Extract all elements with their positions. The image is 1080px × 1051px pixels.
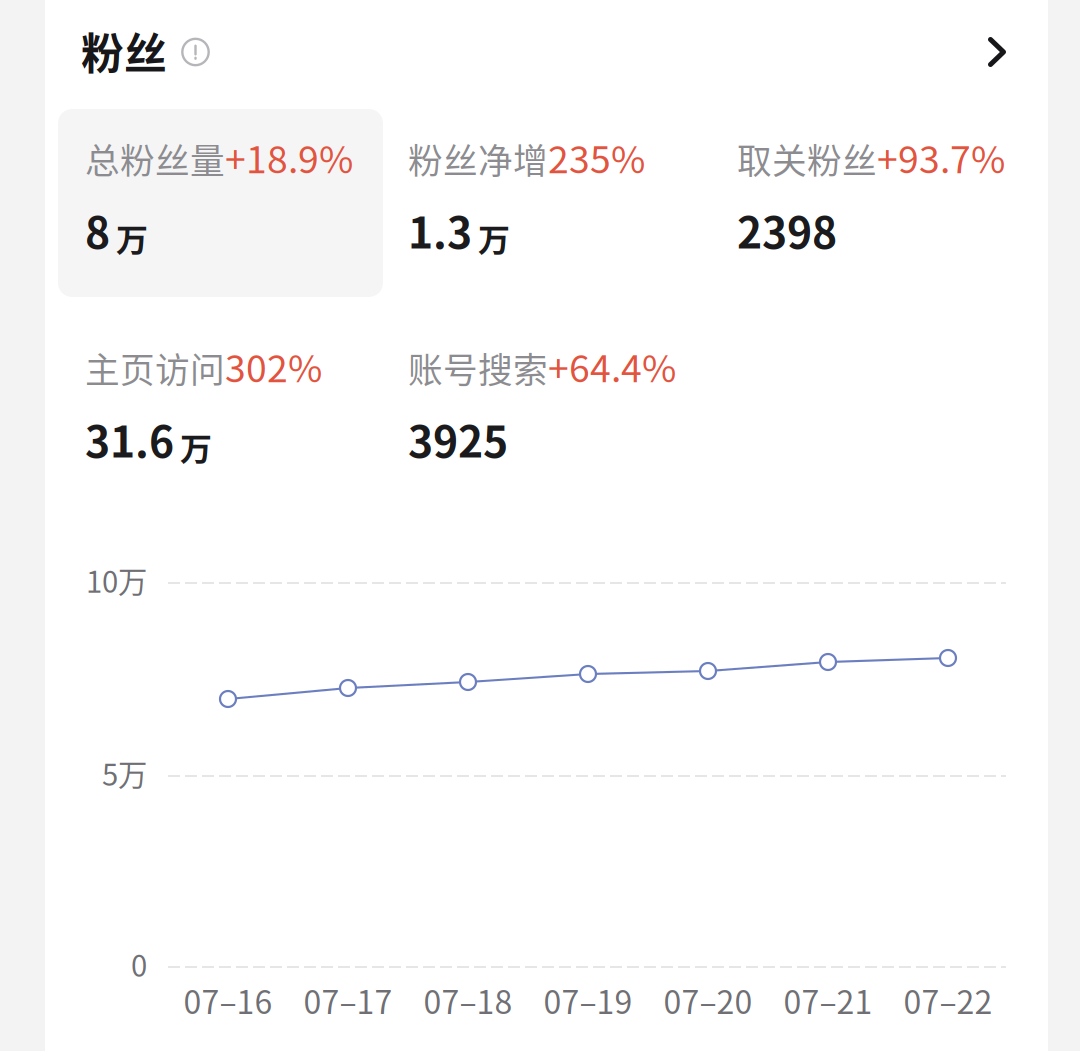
staticText: 总粉丝量: [85, 134, 225, 184]
button[interactable]: 主页访问: [58, 318, 383, 506]
staticText: 235%: [548, 130, 645, 184]
staticText: 粉丝: [81, 20, 167, 82]
button[interactable]: 粉丝 详情: [45, 0, 966, 104]
button[interactable]: 取关粉丝: [710, 109, 1035, 297]
staticText: +93.7%: [877, 130, 1005, 184]
staticText: 万: [116, 215, 148, 261]
staticText: 07–17: [303, 977, 392, 1023]
staticText: 8: [85, 199, 110, 261]
staticText: 07–19: [543, 977, 632, 1023]
staticText: 07–22: [903, 977, 992, 1023]
staticText: 万: [180, 424, 212, 470]
staticText: 07–18: [423, 977, 512, 1023]
staticText: 账号搜索: [408, 343, 548, 393]
staticText: 302%: [225, 339, 322, 393]
staticText: 2398: [737, 199, 837, 261]
staticText: 粉丝净增: [408, 134, 548, 184]
staticText: 取关粉丝: [737, 134, 877, 184]
staticText: 1.3: [408, 199, 472, 261]
staticText: 31.6: [85, 408, 174, 470]
staticText: 主页访问: [85, 343, 225, 393]
staticText: 07–21: [783, 977, 872, 1023]
staticText: +64.4%: [548, 339, 676, 393]
staticText: +18.9%: [225, 130, 353, 184]
button[interactable]: 粉丝净增: [381, 109, 706, 297]
staticText: 10万: [86, 559, 147, 601]
staticText: 5万: [102, 752, 147, 794]
button[interactable]: 总粉丝量: [58, 109, 383, 297]
staticText: 07–16: [183, 977, 272, 1023]
staticText: 0: [131, 943, 147, 985]
staticText: 07–20: [663, 977, 752, 1023]
staticText: 3925: [408, 408, 508, 470]
button[interactable]: 账号搜索: [381, 318, 706, 506]
staticText: 万: [478, 215, 510, 261]
